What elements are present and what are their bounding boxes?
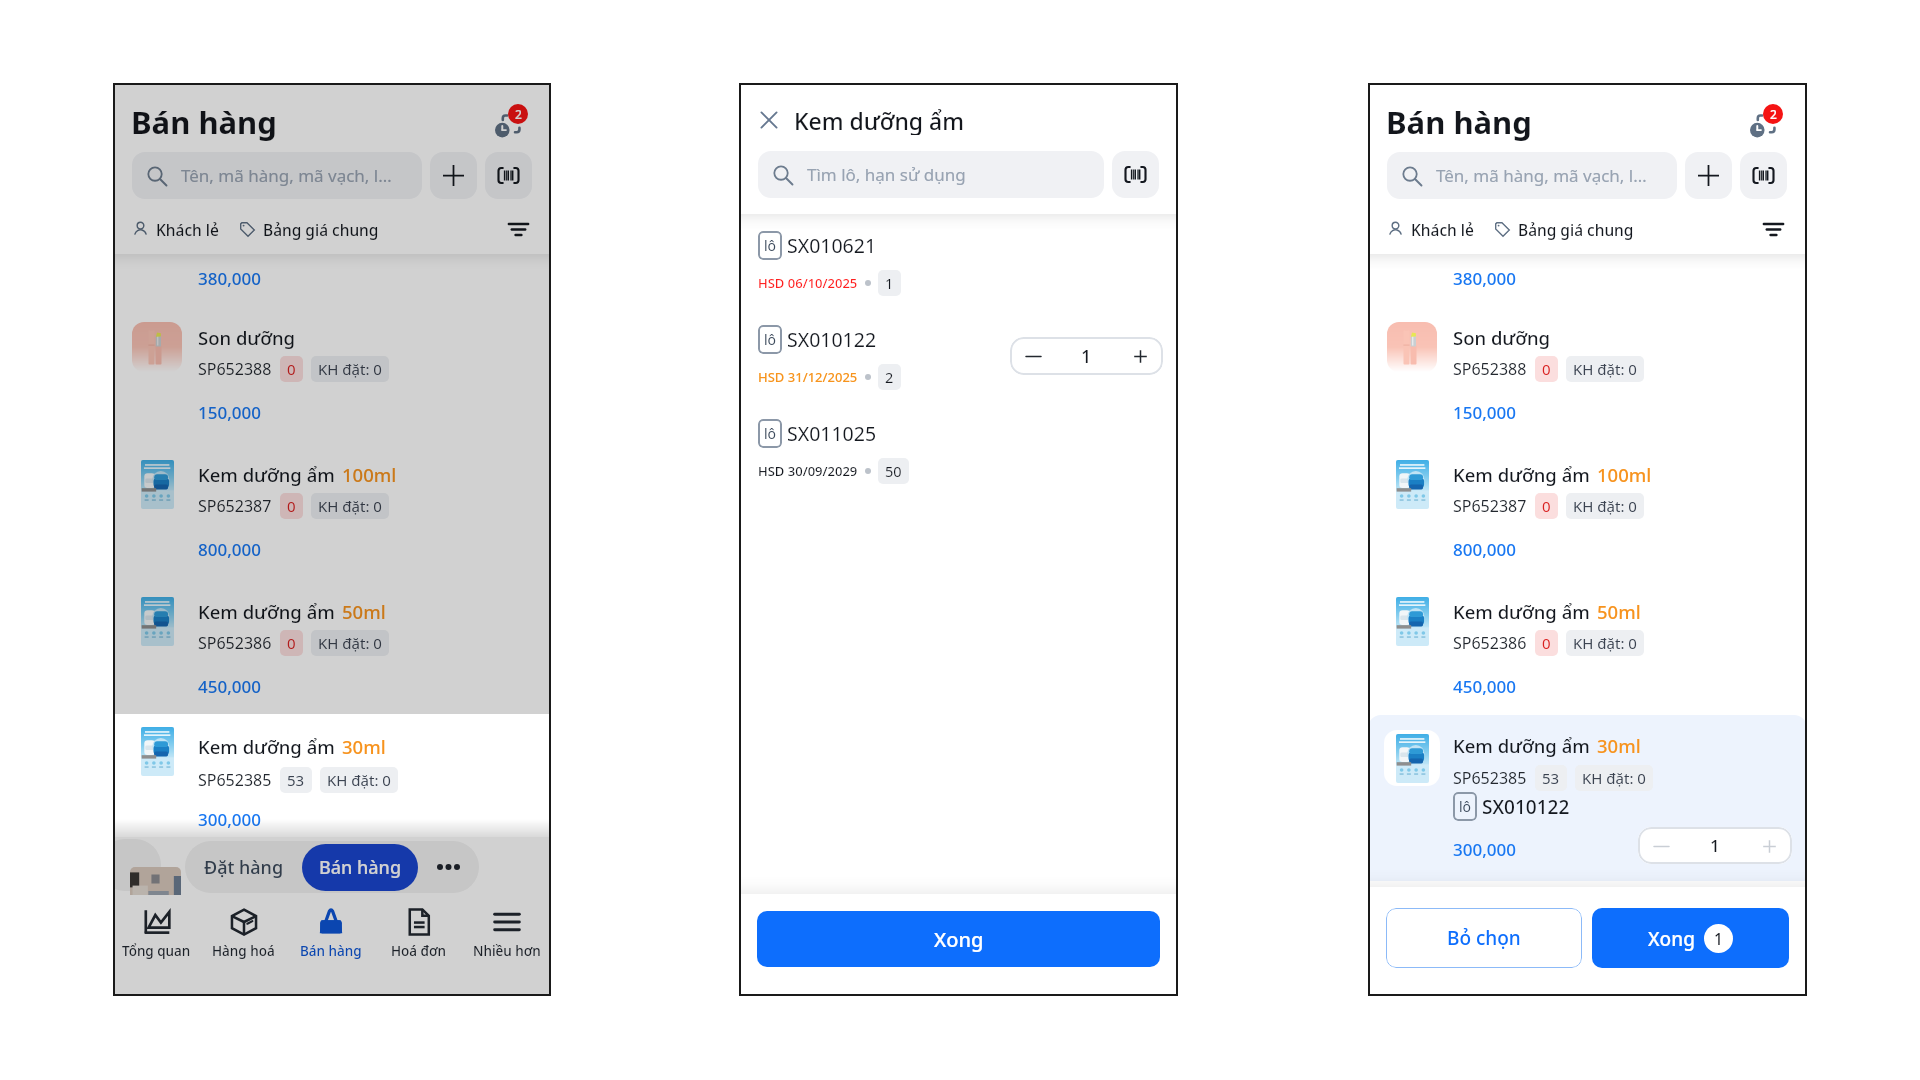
button[interactable]: Kem dưỡng ẩm [1368, 441, 1807, 578]
staticText: Bán hàng [131, 101, 277, 143]
button[interactable]: Bán hàng [302, 844, 418, 891]
staticText: KH đặt: 0 [1582, 768, 1646, 788]
button[interactable]: Kem dưỡng ẩm [1368, 715, 1807, 881]
staticText: KH đặt: 0 [318, 496, 382, 516]
staticText: HSD 06/10/2025 [758, 274, 858, 292]
staticText: 380,000 [1453, 267, 1516, 290]
staticText: 450,000 [1453, 675, 1516, 698]
staticText: SP652385 [1453, 767, 1527, 789]
button[interactable]: Quét mã vạch [1740, 152, 1787, 199]
button[interactable]: Hoá đơn [375, 895, 463, 965]
staticText: 0 [1542, 496, 1551, 516]
staticText: 2 [1770, 106, 1777, 122]
button[interactable]: Bảng giá chung [1494, 219, 1634, 240]
button[interactable]: Hàng hoá [200, 895, 287, 965]
staticText: 150,000 [198, 401, 261, 424]
staticText: Bán hàng [300, 942, 362, 960]
staticText: Hàng hoá [212, 942, 275, 960]
staticText: Bỏ chọn [1447, 925, 1521, 951]
button[interactable]: lô [739, 411, 1178, 505]
button[interactable]: Son dưỡng [1368, 304, 1807, 441]
button[interactable]: Tên, mã hàng, mã vạch, l… [132, 152, 422, 199]
staticText: Kem dưỡng ẩm [198, 462, 335, 487]
staticText: 1 [1714, 928, 1723, 949]
staticText: SP652386 [198, 632, 272, 654]
staticText: Tên, mã hàng, mã vạch, l… [181, 164, 392, 187]
button[interactable]: Tăng [1759, 836, 1779, 856]
button[interactable]: Giảm [1638, 827, 1792, 864]
staticText: 53 [1542, 768, 1560, 788]
staticText: Kem dưỡng ẩm [1453, 462, 1590, 487]
button[interactable]: Kem dưỡng ẩm [1368, 578, 1807, 715]
staticText: SX010122 [787, 326, 877, 353]
button[interactable]: Tuỳ chọn khác [418, 841, 479, 893]
button[interactable]: Xong [757, 911, 1160, 967]
staticText: SP652387 [198, 495, 272, 517]
button[interactable]: Giảm [1023, 346, 1043, 366]
staticText: HSD 30/09/2029 [758, 462, 858, 480]
staticText: lô [1459, 797, 1472, 816]
staticText: SP652387 [1453, 495, 1527, 517]
staticText: Khách lẻ [156, 219, 219, 240]
button[interactable]: Bộ lọc [504, 215, 532, 243]
button[interactable]: Quét mã vạch [1112, 151, 1159, 198]
button[interactable]: Kem dưỡng ẩm [113, 578, 551, 715]
staticText: 1 [885, 273, 894, 293]
staticText: 800,000 [198, 538, 261, 561]
button[interactable]: Lịch sử đơn hàng [487, 100, 535, 148]
button[interactable]: Thêm hàng [1685, 152, 1732, 199]
staticText: Tên, mã hàng, mã vạch, l… [1436, 164, 1647, 187]
button[interactable]: Bán hàng [287, 895, 375, 965]
staticText: SX011025 [787, 420, 877, 447]
staticText: SP652385 [198, 769, 272, 791]
staticText: Kem dưỡng ẩm [1453, 733, 1590, 758]
staticText: KH đặt: 0 [318, 633, 382, 653]
button[interactable]: Tìm lô, hạn sử dụng [758, 151, 1104, 198]
staticText: 53 [287, 770, 305, 790]
button[interactable]: Giảm [1651, 836, 1671, 856]
button[interactable]: Kem dưỡng ẩm [113, 714, 551, 837]
staticText: Đặt hàng [204, 855, 284, 880]
staticText: Xong [1648, 926, 1695, 952]
button[interactable]: Giảm [1010, 337, 1163, 375]
button[interactable]: Tăng [1130, 346, 1150, 366]
button[interactable]: lô [739, 317, 1178, 411]
staticText: 50 [885, 461, 902, 481]
button[interactable]: Khách lẻ [132, 219, 219, 240]
button[interactable]: Bảng giá chung [239, 219, 379, 240]
staticText: Hoá đơn [391, 942, 447, 960]
staticText: Son dưỡng [1453, 325, 1551, 350]
button[interactable]: Lịch sử đơn hàng [1742, 100, 1790, 148]
button[interactable]: Khách lẻ [1387, 219, 1474, 240]
button[interactable]: Son dưỡng [113, 304, 551, 441]
staticText: 800,000 [1453, 538, 1516, 561]
button[interactable]: Bỏ chọn [1386, 908, 1582, 968]
button[interactable]: Tên, mã hàng, mã vạch, l… [1387, 152, 1677, 199]
button[interactable]: Đóng [755, 106, 783, 134]
staticText: SP652388 [198, 358, 272, 380]
staticText: 0 [287, 496, 296, 516]
staticText: 150,000 [1453, 401, 1516, 424]
button[interactable]: Quét mã vạch [485, 152, 532, 199]
staticText: SP652386 [1453, 632, 1527, 654]
staticText: KH đặt: 0 [318, 359, 382, 379]
button[interactable]: Kem dưỡng ẩm [113, 441, 551, 578]
button[interactable]: Tổng quan [113, 895, 200, 965]
button[interactable]: Bộ lọc [1759, 215, 1787, 243]
staticText: Kem dưỡng ẩm [198, 599, 335, 624]
staticText: 30ml [342, 734, 386, 759]
button[interactable]: lô [739, 223, 1178, 317]
staticText: Son dưỡng [198, 325, 296, 350]
staticText: KH đặt: 0 [1573, 496, 1637, 516]
staticText: lô [764, 424, 777, 443]
staticText: 50ml [342, 599, 386, 624]
staticText: Tìm lô, hạn sử dụng [807, 163, 966, 186]
staticText: 300,000 [1453, 838, 1516, 861]
button[interactable]: Thêm hàng [430, 152, 477, 199]
staticText: 0 [287, 359, 296, 379]
staticText: Bán hàng [1386, 101, 1532, 143]
button[interactable]: Đặt hàng [185, 841, 302, 893]
button[interactable]: Nhiều hơn [463, 895, 551, 965]
button[interactable]: Xong [1592, 908, 1789, 968]
staticText: lô [764, 330, 777, 349]
